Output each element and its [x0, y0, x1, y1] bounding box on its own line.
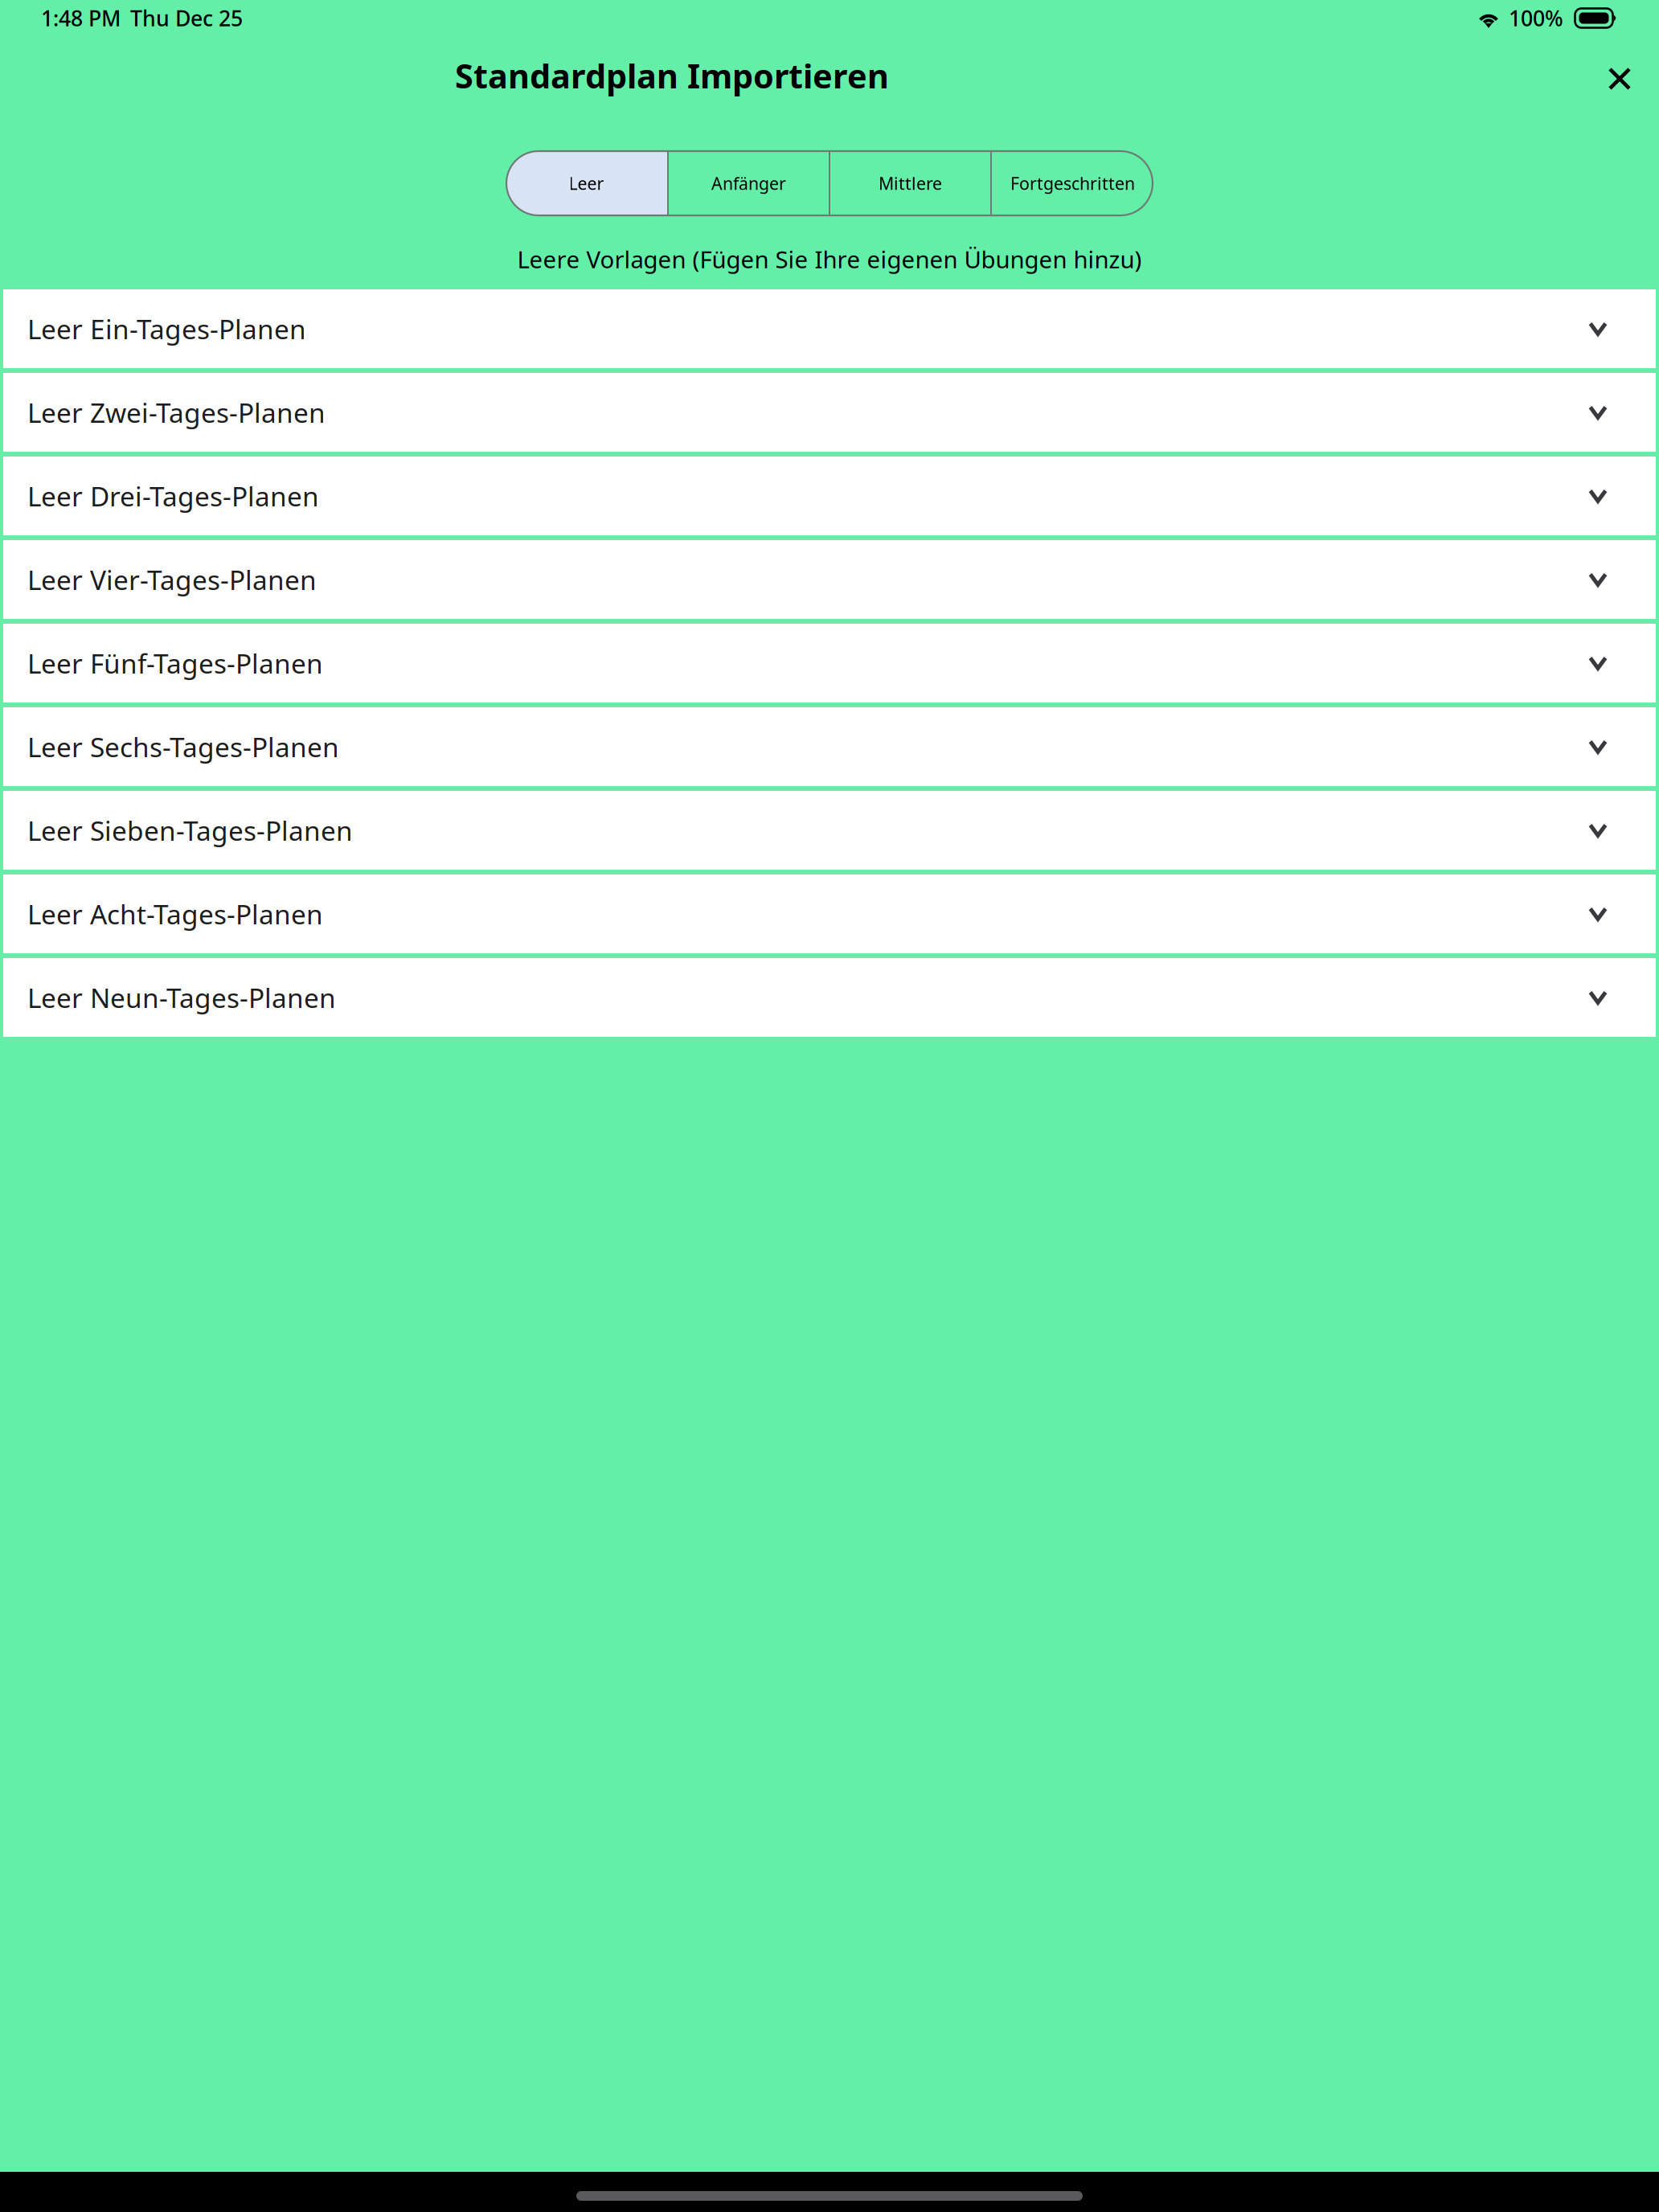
staticText: 100% — [1509, 4, 1563, 32]
staticText: Leer Vier-Tages-Planen — [27, 562, 317, 597]
button[interactable]: Fortgeschritten — [992, 151, 1153, 215]
button[interactable]: Anfänger — [669, 151, 829, 215]
button[interactable]: Leer Ein-Tages-Planen — [3, 289, 1656, 368]
button[interactable]: Leer Sechs-Tages-Planen — [3, 707, 1656, 786]
staticText: Anfänger — [711, 172, 786, 195]
staticText: Fortgeschritten — [1010, 172, 1135, 195]
staticText: Leere Vorlagen (Fügen Sie Ihre eigenen Ü… — [517, 244, 1142, 275]
staticText: Standardplan Importieren — [455, 54, 889, 98]
staticText: Leer Sechs-Tages-Planen — [27, 729, 339, 764]
button[interactable]: Leer — [506, 151, 667, 215]
button[interactable]: Leer Vier-Tages-Planen — [3, 540, 1656, 619]
staticText: Leer Acht-Tages-Planen — [27, 896, 323, 932]
staticText: Leer Zwei-Tages-Planen — [27, 394, 326, 430]
button[interactable]: Leer Zwei-Tages-Planen — [3, 373, 1656, 452]
staticText: Thu Dec 25 — [130, 4, 243, 32]
staticText: Leer Fünf-Tages-Planen — [27, 645, 323, 681]
button[interactable]: Leer Acht-Tages-Planen — [3, 875, 1656, 953]
staticText: Leer Sieben-Tages-Planen — [27, 812, 353, 848]
staticText: Leer — [569, 172, 604, 195]
staticText: Leer Ein-Tages-Planen — [27, 311, 306, 347]
staticText: Leer Drei-Tages-Planen — [27, 478, 319, 514]
button[interactable]: Leer Neun-Tages-Planen — [3, 958, 1656, 1037]
button[interactable]: Mittlere — [830, 151, 990, 215]
button[interactable]: Leer Fünf-Tages-Planen — [3, 624, 1656, 703]
button[interactable]: Close — [1583, 46, 1656, 105]
button[interactable]: Leer Drei-Tages-Planen — [3, 457, 1656, 535]
staticText: Mittlere — [879, 172, 942, 195]
button[interactable]: Leer Sieben-Tages-Planen — [3, 791, 1656, 870]
staticText: Leer Neun-Tages-Planen — [27, 980, 336, 1015]
staticText: 1:48 PM — [41, 4, 121, 32]
